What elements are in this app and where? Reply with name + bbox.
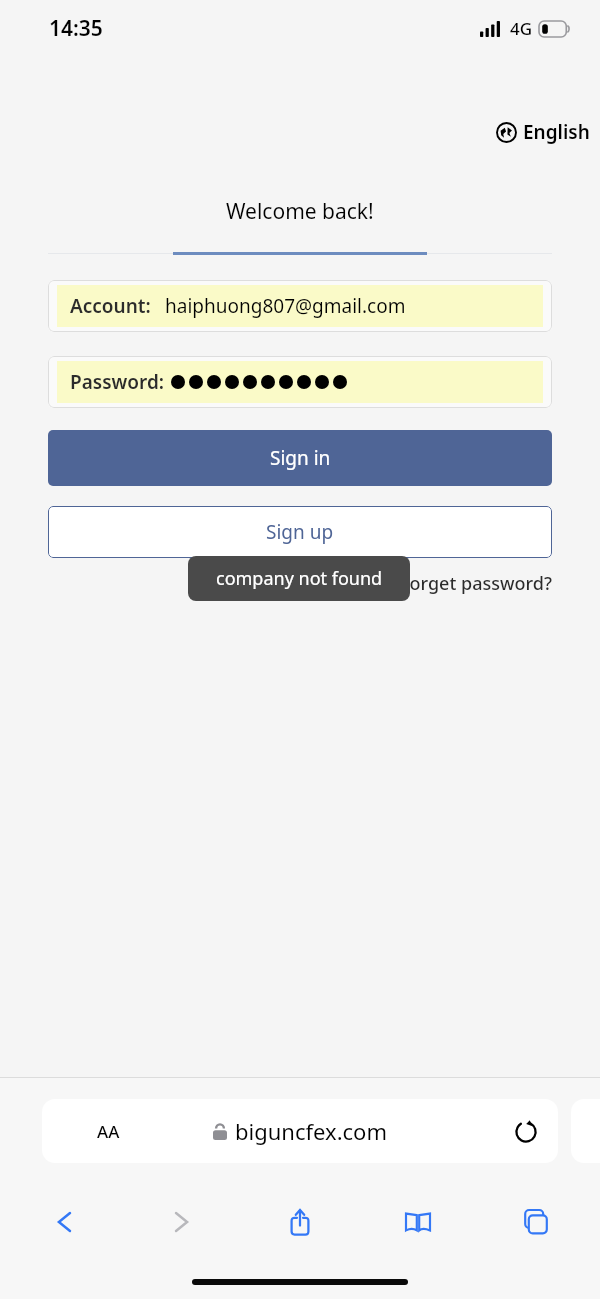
staticText: biguncfex.com [235, 1116, 387, 1146]
staticText: Sign in [270, 445, 331, 471]
staticText: Account: [70, 293, 151, 319]
button[interactable]: Language [487, 115, 600, 149]
button[interactable]: Forward [140, 1196, 224, 1248]
button[interactable]: Sign up [48, 506, 552, 558]
button[interactable]: Account: [48, 280, 552, 332]
other: Language [497, 123, 516, 142]
button[interactable]: Tabs [494, 1196, 578, 1248]
button[interactable]: Back [22, 1196, 106, 1248]
other: Reload [514, 1119, 538, 1143]
button[interactable]: Share [258, 1196, 342, 1248]
staticText: haiphuong807@gmail.com [165, 293, 406, 319]
staticText: AA [97, 1120, 120, 1143]
button[interactable]: Forget password? [400, 571, 552, 596]
button[interactable]: Bookmarks [376, 1196, 460, 1248]
staticText: company not found [216, 566, 383, 591]
button[interactable]: AA [42, 1099, 558, 1163]
button[interactable]: Welcome back! [202, 197, 398, 226]
staticText: Sign up [266, 519, 334, 545]
staticText: Password: [70, 369, 165, 395]
button[interactable]: Password: [48, 356, 552, 408]
staticText: English [523, 119, 590, 145]
staticText: 4G [510, 17, 533, 40]
button[interactable]: Sign in [48, 430, 552, 486]
staticText: 14:35 [49, 14, 103, 43]
